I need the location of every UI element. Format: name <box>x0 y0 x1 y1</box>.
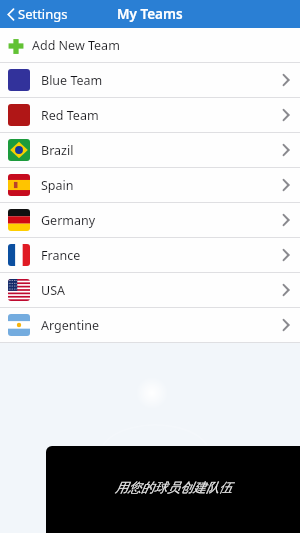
button[interactable]: 用您的球员创建队伍 <box>46 446 300 533</box>
staticText: Argentine <box>41 317 100 334</box>
staticText: France <box>41 247 81 264</box>
other: Blue team colour <box>8 69 30 91</box>
staticText: Germany <box>41 212 96 229</box>
staticText: Brazil <box>41 142 74 159</box>
staticText: Add New Team <box>32 37 120 54</box>
other: USA flag <box>8 279 30 301</box>
button[interactable]: Add New Team <box>0 28 300 63</box>
staticText: Blue Team <box>41 72 103 89</box>
other: France flag <box>8 244 30 266</box>
button[interactable]: Brazil flag <box>0 133 300 167</box>
button[interactable]: USA flag <box>0 273 300 307</box>
staticText: 用您的球员创建队伍 <box>115 479 232 495</box>
other: Brazil flag <box>8 139 30 161</box>
staticText: My Teams <box>117 5 183 23</box>
button[interactable]: Spain flag <box>0 168 300 202</box>
other: Germany flag <box>8 209 30 231</box>
staticText: Red Team <box>41 107 99 124</box>
button[interactable]: Red team colour <box>0 98 300 132</box>
button[interactable]: Settings <box>0 2 76 26</box>
button[interactable]: Argentina flag <box>0 308 300 342</box>
other: Red team colour <box>8 104 30 126</box>
staticText: USA <box>41 282 65 299</box>
staticText: Spain <box>41 177 74 194</box>
button[interactable]: Blue team colour <box>0 63 300 97</box>
staticText: Settings <box>18 5 68 23</box>
other: Spain flag <box>8 174 30 196</box>
other: Argentina flag <box>8 314 30 336</box>
button[interactable]: Germany flag <box>0 203 300 237</box>
button[interactable]: France flag <box>0 238 300 272</box>
